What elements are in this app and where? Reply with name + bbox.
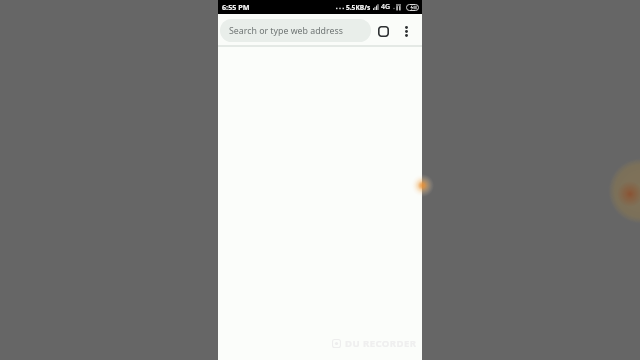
staticText: 6:55 PM [222, 2, 250, 12]
staticText: 5.5KB/s [346, 3, 371, 12]
button[interactable]: Screen recorder [411, 174, 434, 197]
staticText: 4G [381, 2, 391, 12]
staticText: DU RECORDER [345, 337, 417, 350]
button[interactable]: More options [395, 20, 417, 42]
staticText: Search or type web address [229, 25, 343, 37]
button[interactable]: Switch tabs [372, 20, 394, 42]
button[interactable]: Search or type web address [220, 19, 371, 42]
